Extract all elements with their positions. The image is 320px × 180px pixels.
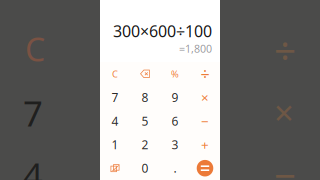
staticText: . [173,160,176,176]
button[interactable]: Backspace [130,62,160,86]
staticText: 7 [23,90,43,136]
staticText: + [201,136,209,153]
button[interactable]: 5 [130,109,160,133]
button[interactable]: 9 [160,86,190,109]
staticText: 4 [23,152,43,180]
button[interactable]: × [190,86,220,109]
staticText: 0 [141,160,148,176]
button[interactable]: 4 [100,109,130,133]
staticText: − [201,112,209,130]
staticText: 5 [141,113,148,129]
button[interactable]: 3 [160,133,190,156]
button[interactable]: + [190,133,220,156]
button[interactable]: C [100,62,130,86]
staticText: 4 [111,113,118,129]
staticText: 1 [111,137,118,152]
staticText: − [274,149,296,180]
button[interactable]: 6 [160,109,190,133]
button[interactable]: 8 [130,86,160,109]
staticText: % [171,68,179,80]
staticText: C [112,68,118,80]
button[interactable]: 0 [130,156,160,180]
button[interactable]: Equals [190,156,220,180]
staticText: ÷ [200,63,209,84]
staticText: × [274,89,294,135]
staticText: 8 [141,89,148,105]
staticText: =1,800 [179,41,212,56]
button[interactable]: 7 [100,86,130,109]
button[interactable]: 1 [100,133,130,156]
staticText: 7 [111,89,118,105]
button[interactable]: 2 [130,133,160,156]
staticText: × [201,88,209,106]
button[interactable]: % [160,62,190,86]
staticText: 9 [171,89,178,105]
staticText: C [25,28,45,70]
button[interactable]: Unit converter [100,156,130,180]
button[interactable]: . [160,156,190,180]
staticText: 300×600÷100 [113,20,212,41]
staticText: 3 [171,137,178,152]
button[interactable]: ÷ [190,62,220,86]
staticText: ÷ [274,24,296,76]
staticText: 6 [171,113,178,129]
staticText: 2 [141,137,148,152]
button[interactable]: − [190,109,220,133]
